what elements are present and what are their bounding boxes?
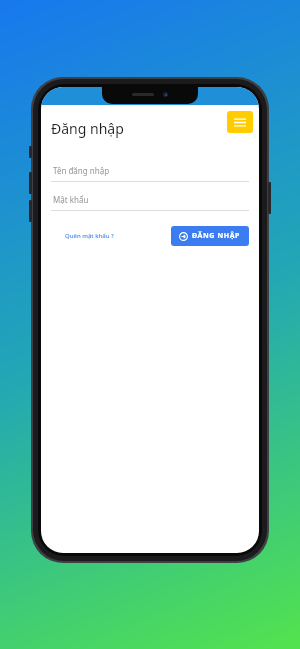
button[interactable]: Menu [227,111,253,133]
button[interactable]: Quên mật khẩu ? [65,232,114,240]
button[interactable]: ĐĂNG NHẬP [171,226,249,246]
staticText: Tên đăng nhập [53,165,110,176]
staticText: Đăng nhập [51,119,124,138]
staticText: Quên mật khẩu ? [65,232,114,240]
staticText: ĐĂNG NHẬP [192,231,241,241]
staticText: Mật khẩu [53,194,89,205]
